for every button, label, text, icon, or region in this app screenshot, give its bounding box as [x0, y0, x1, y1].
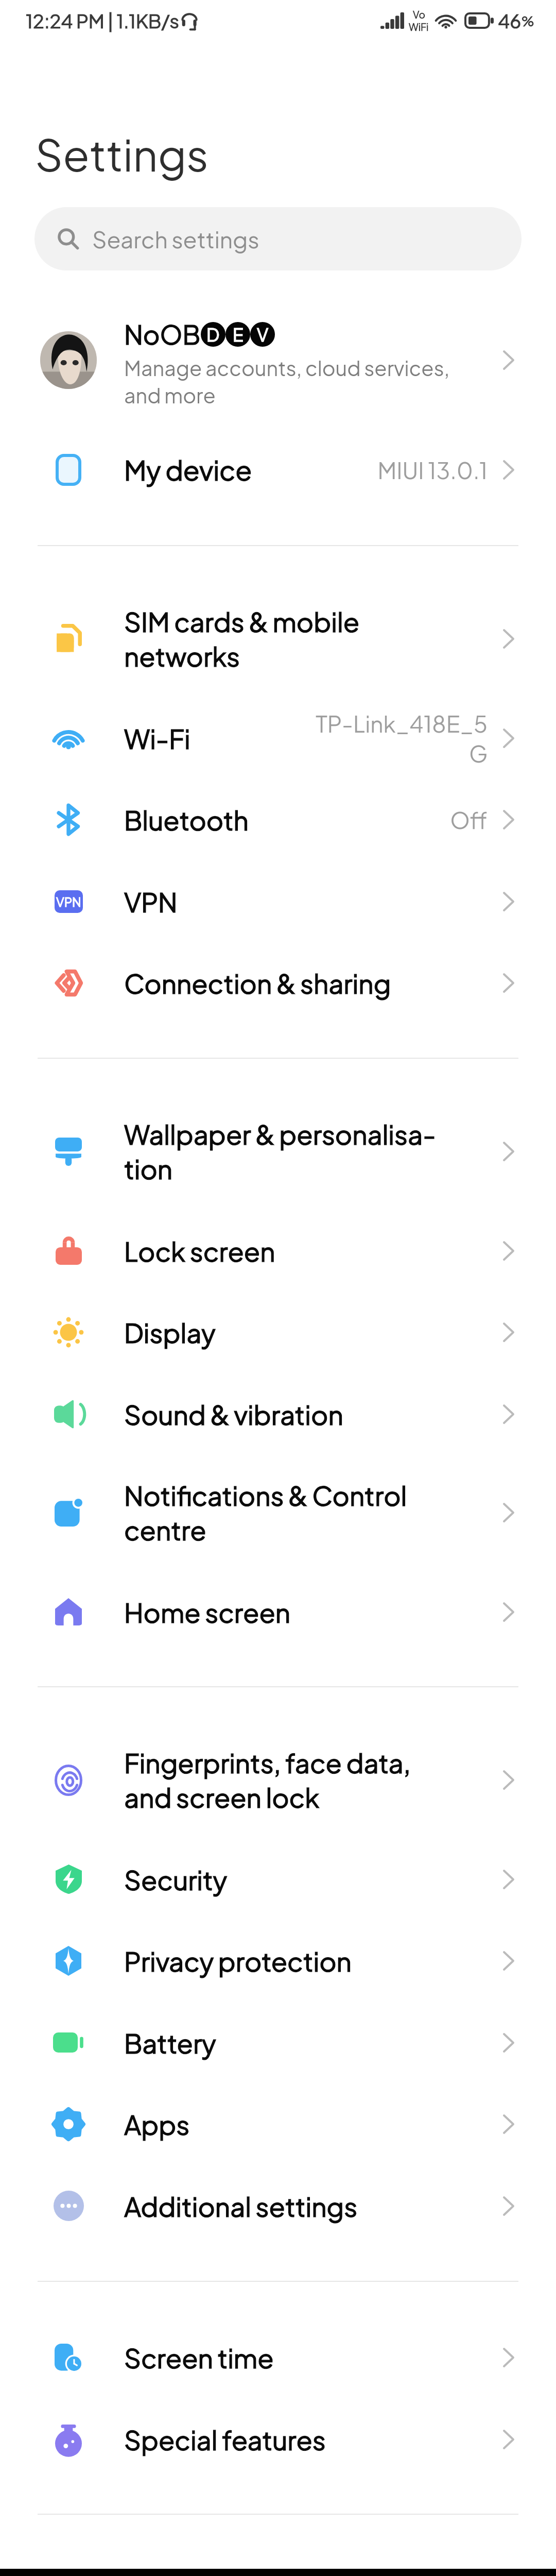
staticText: V	[257, 324, 269, 346]
staticText: Lock screen	[124, 1234, 480, 1267]
staticText: Privacy protection	[124, 1944, 480, 1977]
button[interactable]: Sound & vibration	[0, 1373, 556, 1455]
button[interactable]: Notifications & Control centre	[0, 1454, 556, 1571]
staticText: Settings	[35, 127, 208, 181]
staticText: E	[233, 324, 244, 346]
button[interactable]: Fingerprints, face data, and screen lock	[0, 1722, 556, 1838]
button[interactable]: VPN	[0, 860, 556, 942]
staticText: Home screen	[124, 1596, 480, 1629]
staticText: Security	[124, 1863, 480, 1896]
staticText: Wallpaper & personalisa- tion	[124, 1117, 480, 1185]
staticText: Sound & vibration	[124, 1398, 480, 1431]
staticText: Additional settings	[124, 2190, 480, 2223]
staticText: Wi-Fi	[124, 722, 300, 755]
staticText: Notifications & Control centre	[124, 1479, 480, 1547]
button[interactable]: Special features	[0, 2398, 556, 2480]
staticText: Connection & sharing	[124, 967, 480, 999]
button[interactable]: Wi-Fi	[0, 697, 556, 779]
staticText: D	[206, 324, 220, 346]
button[interactable]: Search settings	[34, 207, 522, 270]
staticText: Fingerprints, face data, and screen lock	[124, 1746, 480, 1814]
button[interactable]: Lock screen	[0, 1210, 556, 1292]
button[interactable]: My device	[0, 429, 556, 511]
staticText: 12:24 PM | 1.1KB/s	[26, 9, 180, 33]
staticText: VPN	[124, 885, 480, 918]
staticText: Display	[124, 1316, 480, 1349]
button[interactable]: Additional settings	[0, 2165, 556, 2247]
button[interactable]: Security	[0, 1838, 556, 1920]
staticText: Search settings	[92, 225, 259, 253]
button[interactable]: Privacy protection	[0, 1920, 556, 2002]
staticText: MIUI 13.0.1	[377, 455, 488, 484]
button[interactable]: Accounts & sync	[0, 2549, 556, 2576]
staticText: WiFi	[409, 21, 429, 33]
staticText: VPN	[56, 894, 81, 909]
button[interactable]: Home screen	[0, 1571, 556, 1653]
staticText: NoOB	[124, 318, 201, 350]
staticText: My device	[124, 453, 370, 487]
button[interactable]: Display	[0, 1291, 556, 1373]
staticText: %	[522, 13, 534, 29]
staticText: Battery	[124, 2026, 480, 2059]
staticText: TP-Link_418E_5 G	[307, 709, 488, 768]
button[interactable]: Wallpaper & personalisa- tion	[0, 1093, 556, 1210]
staticText: Off	[450, 805, 488, 834]
button[interactable]: SIM cards & mobile networks	[0, 581, 556, 697]
button[interactable]: Battery	[0, 2002, 556, 2083]
staticText: Vo	[413, 8, 425, 21]
button[interactable]: NoOB	[0, 304, 556, 415]
staticText: Manage accounts, cloud services, and mor…	[124, 355, 450, 408]
staticText: Apps	[124, 2108, 480, 2141]
staticText: SIM cards & mobile networks	[124, 605, 480, 673]
staticText: Bluetooth	[124, 803, 443, 836]
staticText: Special features	[124, 2423, 480, 2456]
button[interactable]: Connection & sharing	[0, 942, 556, 1024]
button[interactable]: Bluetooth	[0, 778, 556, 860]
staticText: Screen time	[124, 2341, 480, 2374]
button[interactable]: Apps	[0, 2083, 556, 2165]
staticText: 46	[498, 9, 522, 33]
button[interactable]: Screen time	[0, 2316, 556, 2398]
